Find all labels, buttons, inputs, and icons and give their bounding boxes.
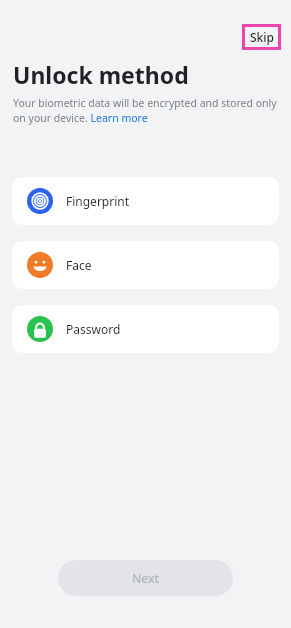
- staticText: Unlock method: [13, 59, 189, 90]
- staticText: Face: [66, 257, 92, 273]
- button[interactable]: Fingerprint: [12, 177, 279, 225]
- button[interactable]: Next: [58, 560, 233, 596]
- staticText: Skip: [250, 29, 274, 45]
- staticText: Next: [132, 570, 160, 586]
- button[interactable]: Skip: [245, 27, 278, 47]
- staticText: Your biometric data will be encrypted an…: [13, 96, 278, 125]
- staticText: Fingerprint: [66, 193, 130, 209]
- button[interactable]: Password: [12, 305, 279, 353]
- staticText: Password: [66, 321, 121, 337]
- button[interactable]: Face: [12, 241, 279, 289]
